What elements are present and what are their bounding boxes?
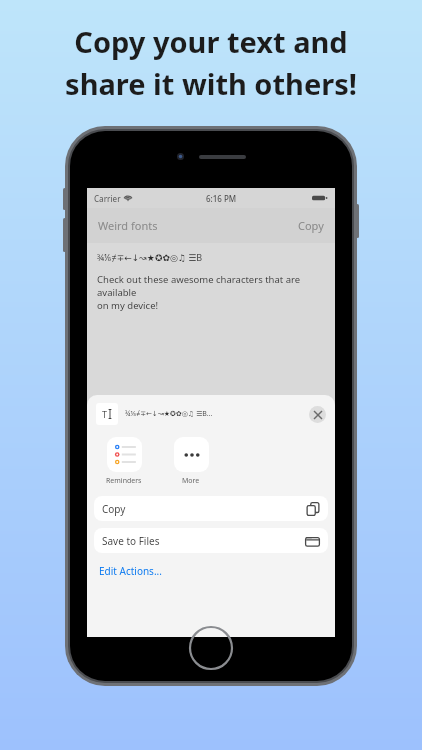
button[interactable]: Copy	[298, 218, 324, 233]
staticText: Weird fonts	[98, 218, 158, 233]
staticText: 6:16 PM	[206, 193, 237, 204]
staticText: share it with others!	[65, 64, 357, 103]
staticText: ¾⅛≠∓←↓↝★✪✿◎♫ ☰B	[97, 251, 203, 263]
staticText: Check out these awesome characters that …	[97, 273, 325, 312]
staticText: Carrier	[94, 193, 121, 204]
staticText: Reminders	[106, 476, 142, 486]
button[interactable]: More	[167, 437, 215, 486]
button[interactable]: Copy	[94, 496, 328, 521]
staticText: More	[182, 476, 200, 486]
staticText: Copy	[102, 502, 126, 516]
staticText: Save to Files	[102, 534, 160, 548]
staticText: Copy	[298, 218, 324, 233]
button[interactable]: Save to Files	[94, 528, 328, 553]
button[interactable]: Close	[309, 406, 326, 423]
staticText: Edit Actions...	[99, 564, 162, 578]
button[interactable]: Edit Actions...	[87, 562, 335, 580]
staticText: Copy your text and	[74, 22, 348, 61]
staticText: T	[102, 408, 108, 420]
staticText: ¾⅛≠∓←↓↝★✪✿◎♫ ☰B…	[125, 409, 213, 419]
button[interactable]: Reminders	[100, 437, 148, 486]
